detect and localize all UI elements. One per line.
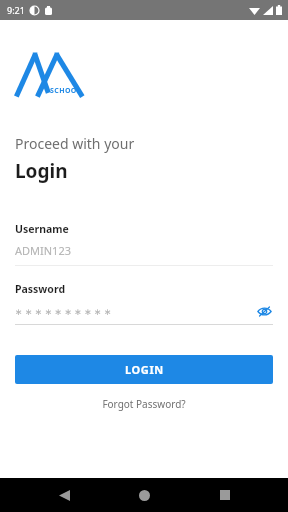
button[interactable]: Back [47, 478, 81, 512]
button[interactable]: Recent apps [208, 478, 242, 512]
staticText: Proceed with your [15, 134, 135, 153]
staticText: SCHOOL [50, 86, 82, 96]
staticText: Username [15, 222, 69, 236]
staticText: ∗ ∗ ∗ ∗ ∗ ∗ ∗ ∗ ∗ ∗ [15, 305, 255, 317]
button[interactable]: Toggle password visibility [255, 302, 273, 320]
button[interactable]: ADMIN123 [15, 243, 273, 258]
button[interactable]: Home [127, 478, 161, 512]
button[interactable]: Forgot Password? [96, 395, 192, 413]
staticText: 9:21 [7, 4, 25, 16]
staticText: Forgot Password? [102, 397, 186, 411]
staticText: LOGIN [125, 362, 164, 377]
button[interactable]: LOGIN [15, 355, 273, 384]
staticText: Login [15, 158, 68, 184]
button[interactable]: ∗ ∗ ∗ ∗ ∗ ∗ ∗ ∗ ∗ ∗ [15, 302, 273, 320]
staticText: Password [15, 282, 66, 296]
staticText: ADMIN123 [15, 243, 72, 258]
